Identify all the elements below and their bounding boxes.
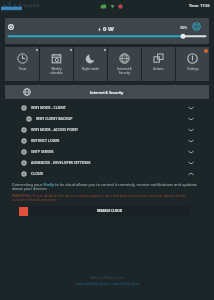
staticText: Allterco Robotics Ltd xyxy=(91,275,124,280)
button[interactable]: WIFI MODE - CLIENT xyxy=(5,102,209,113)
button[interactable]: Timer xyxy=(5,47,39,81)
staticText: Time: 17:36 xyxy=(189,3,210,8)
staticText: ADVANCED - DEVELOPER SETTINGS xyxy=(31,160,91,165)
staticText: Weekly schedule xyxy=(50,67,63,75)
staticText: WIFI MODE - ACCESS POINT xyxy=(31,127,79,132)
staticText: Night mode xyxy=(82,67,99,71)
button[interactable]: Settings xyxy=(176,47,209,81)
button[interactable]: ADVANCED - DEVELOPER SETTINGS xyxy=(5,157,209,168)
staticText: 38% xyxy=(180,25,187,30)
button[interactable]: Night mode xyxy=(74,47,107,81)
button[interactable]: DISABLE CLOUD xyxy=(29,206,190,216)
button[interactable]: RESTRICT LOGIN xyxy=(5,135,209,146)
staticText: Connecting your Shelly to its cloud allo… xyxy=(12,182,197,192)
staticText: WARNING: If you disable the device cloud… xyxy=(12,193,197,203)
button[interactable]: Internet & Security xyxy=(108,47,141,81)
staticText: Timer xyxy=(18,67,27,71)
button[interactable]: Actions xyxy=(142,47,175,81)
staticText: Internet & Security xyxy=(117,67,132,75)
button[interactable]: WIFI MODE - ACCESS POINT xyxy=(5,124,209,135)
staticText: Settings xyxy=(187,67,199,71)
button[interactable]: WIFI CLIENT BACKUP xyxy=(5,113,209,124)
staticText: DISABLE CLOUD xyxy=(97,209,123,213)
staticText: WIFI MODE - CLIENT xyxy=(31,105,66,110)
button[interactable]: Brightness xyxy=(192,22,201,31)
staticText: WIFI CLIENT BACKUP xyxy=(36,116,73,121)
staticText: Shelly1PM xyxy=(23,3,40,8)
button[interactable]: SNTP SERVER xyxy=(5,146,209,157)
button[interactable]: Weekly schedule xyxy=(40,47,73,81)
staticText: Actions xyxy=(153,67,164,71)
button[interactable]: Power toggle xyxy=(8,24,14,30)
staticText: CLOUD xyxy=(31,171,44,176)
staticText: SNTP SERVER xyxy=(31,149,54,154)
button[interactable]: CLOUD xyxy=(5,168,209,179)
button[interactable]: Internet & Security xyxy=(5,85,209,99)
staticText: Internet & Security xyxy=(90,90,124,95)
button[interactable]: Brightness slider xyxy=(7,33,207,39)
staticText: RESTRICT LOGIN xyxy=(31,138,60,143)
staticText: 0 W xyxy=(103,25,114,33)
button[interactable]: support@shelly.cloud | https://shelly.cl… xyxy=(75,282,140,286)
